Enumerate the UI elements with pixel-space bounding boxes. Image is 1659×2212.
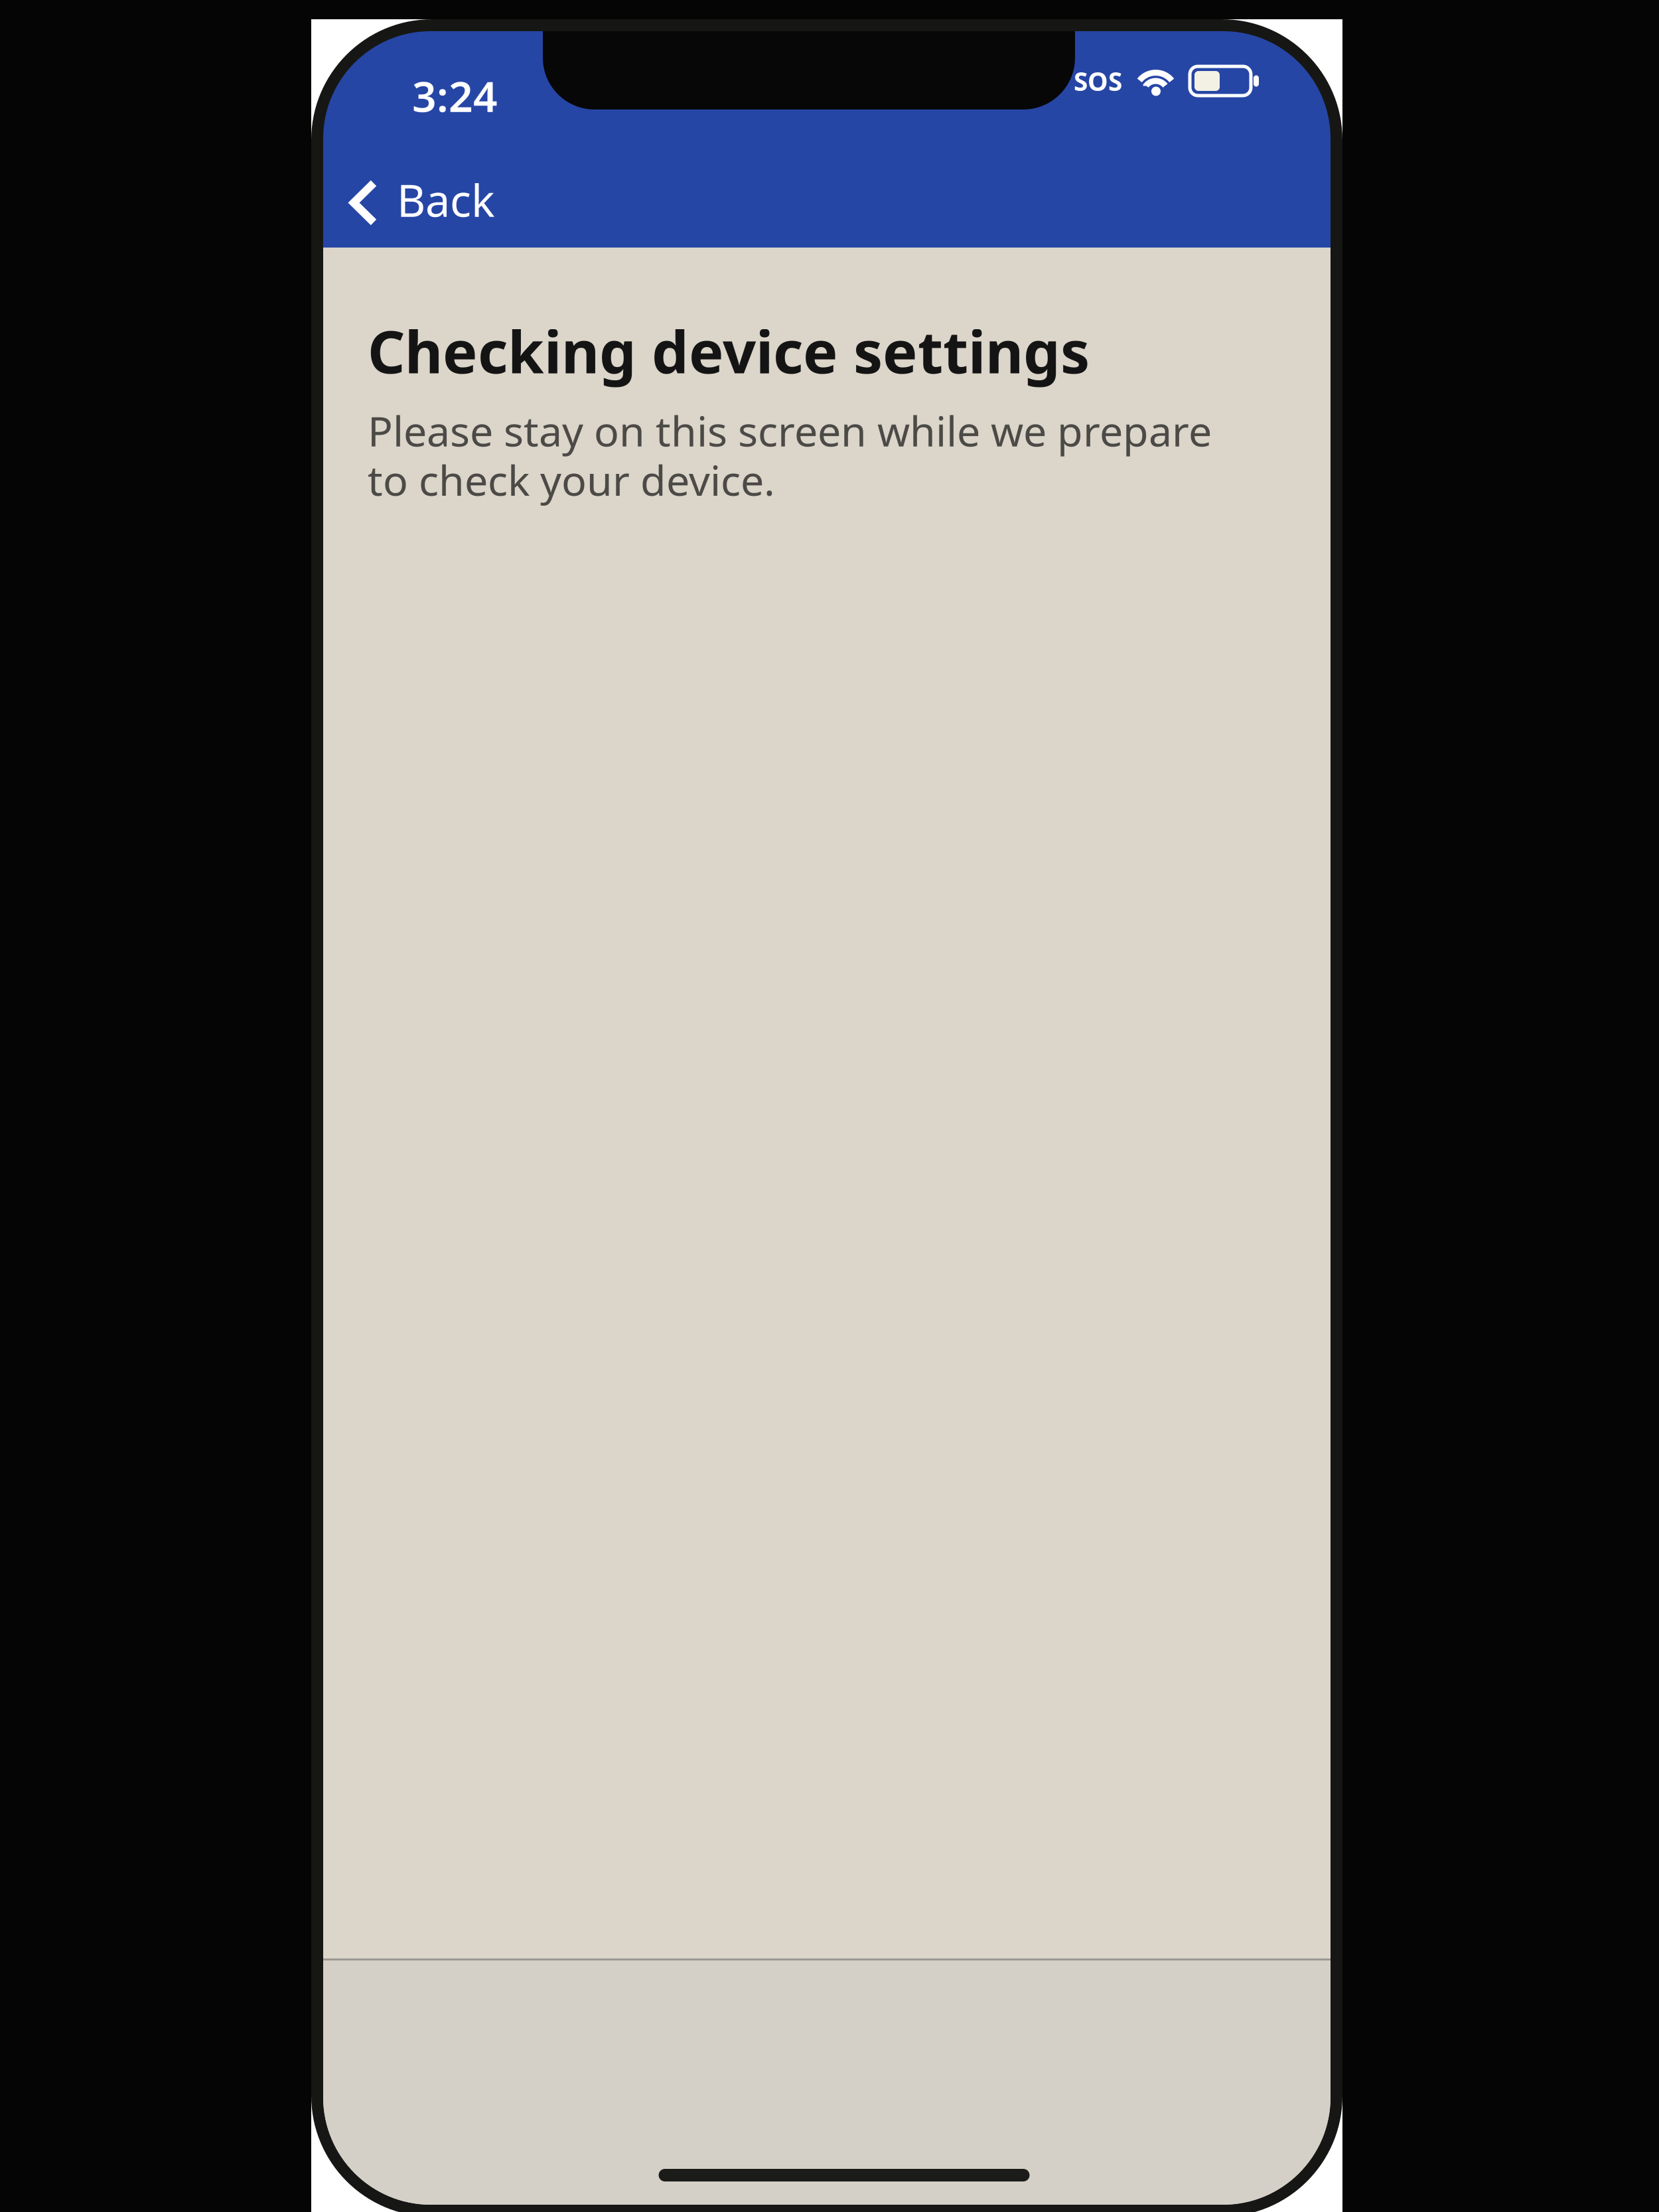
staticText: Checking device settings: [368, 312, 1090, 390]
staticText: SOS: [1074, 64, 1122, 98]
staticText: 3:24: [412, 67, 498, 124]
staticText: Please stay on this screen while we prep…: [368, 403, 1212, 507]
staticText: Back: [397, 170, 495, 229]
button[interactable]: Back: [319, 161, 520, 238]
